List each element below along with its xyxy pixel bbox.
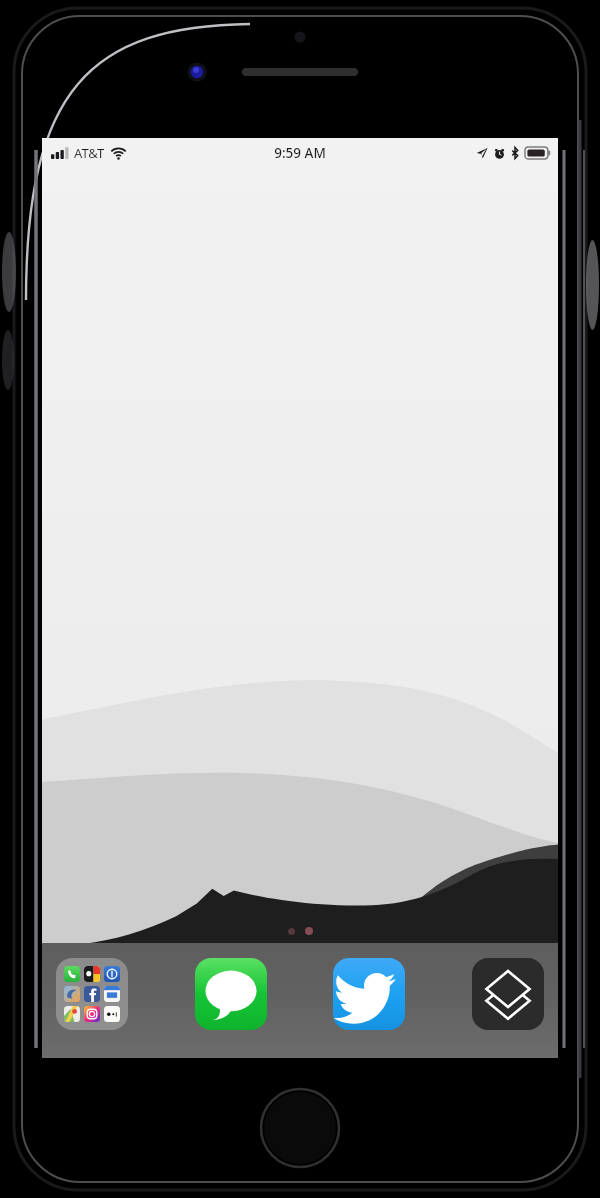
button[interactable]: Apps folder	[56, 958, 128, 1030]
staticText: 9:59 AM	[274, 144, 326, 162]
button[interactable]: Twitter	[333, 958, 405, 1030]
button[interactable]: Layers app	[472, 958, 544, 1030]
button[interactable]: Messages	[195, 958, 267, 1030]
staticText: AT&T	[74, 144, 105, 162]
